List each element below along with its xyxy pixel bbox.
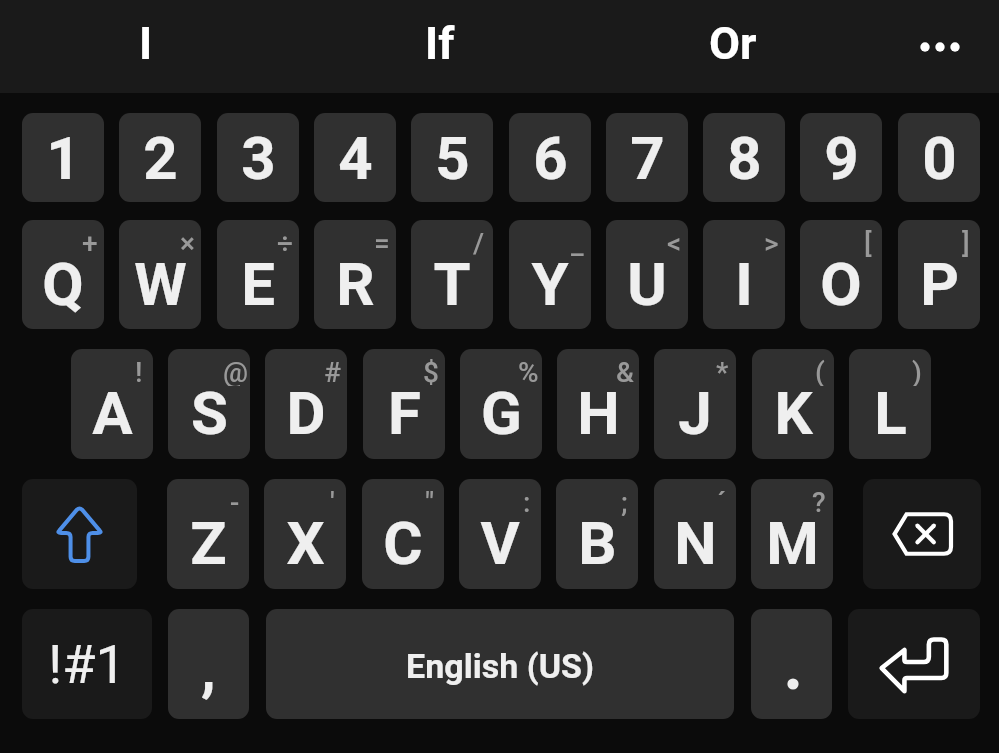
button[interactable]: # xyxy=(265,349,347,459)
button[interactable]: + xyxy=(22,220,104,329)
staticText: If xyxy=(425,17,455,70)
staticText: 6 xyxy=(533,123,568,193)
staticText: ) xyxy=(912,356,922,386)
staticText: M xyxy=(766,508,819,578)
staticText: I xyxy=(735,249,753,319)
staticText: Q xyxy=(42,249,84,319)
button[interactable]: ) xyxy=(849,349,931,459)
button[interactable]: 3 xyxy=(217,113,299,202)
button[interactable]: ' xyxy=(264,479,346,589)
button[interactable]: 9 xyxy=(800,113,882,202)
staticText: H xyxy=(577,378,620,448)
button[interactable]: " xyxy=(362,479,444,589)
button[interactable]: $ xyxy=(363,349,445,459)
staticText: 7 xyxy=(630,123,665,193)
staticText: A xyxy=(92,378,133,448)
staticText: / xyxy=(473,227,485,257)
staticText: N xyxy=(674,508,717,578)
staticText: English (US) xyxy=(406,646,594,686)
staticText: : xyxy=(523,486,531,516)
staticText: B xyxy=(578,508,617,578)
staticText: Y xyxy=(531,249,569,319)
staticText: % xyxy=(518,356,539,386)
button[interactable]: Comma xyxy=(168,609,249,719)
staticText: ; xyxy=(621,486,628,516)
button[interactable]: = xyxy=(314,220,396,329)
staticText: F xyxy=(388,378,421,448)
button[interactable]: English (US) xyxy=(266,609,734,719)
button[interactable]: < xyxy=(606,220,688,329)
staticText: 4 xyxy=(338,123,373,193)
staticText: + xyxy=(82,227,98,257)
staticText: Z xyxy=(190,508,227,578)
staticText: _ xyxy=(571,227,584,257)
staticText: E xyxy=(241,249,275,319)
staticText: C xyxy=(383,508,423,578)
button[interactable]: % xyxy=(460,349,542,459)
button[interactable]: 8 xyxy=(703,113,785,202)
button[interactable]: 0 xyxy=(898,113,980,202)
button[interactable]: Enter xyxy=(848,609,980,719)
staticText: ´ xyxy=(717,486,727,516)
staticText: ( xyxy=(815,356,825,386)
staticText: G xyxy=(481,378,522,448)
staticText: 3 xyxy=(241,123,276,193)
button[interactable]: / xyxy=(411,220,493,329)
staticText: K xyxy=(774,378,813,448)
staticText: D xyxy=(286,378,326,448)
button[interactable]: ] xyxy=(898,220,980,329)
staticText: I xyxy=(139,17,153,70)
staticText: Or xyxy=(709,17,757,70)
button[interactable]: !#1 xyxy=(22,609,152,719)
button[interactable]: × xyxy=(119,220,201,329)
staticText: ? xyxy=(812,486,826,516)
button[interactable]: : xyxy=(459,479,541,589)
button[interactable]: 4 xyxy=(314,113,396,202)
button[interactable]: If xyxy=(350,0,530,93)
button[interactable]: ; xyxy=(556,479,638,589)
button[interactable]: @ xyxy=(168,349,250,459)
staticText: # xyxy=(324,356,342,386)
button[interactable]: 7 xyxy=(606,113,688,202)
button[interactable]: Backspace xyxy=(863,479,981,589)
staticText: [ xyxy=(864,227,872,257)
button[interactable]: Or xyxy=(643,0,823,93)
staticText: , xyxy=(201,633,216,703)
button[interactable]: ? xyxy=(751,479,833,589)
button[interactable]: [ xyxy=(800,220,882,329)
staticText: ÷ xyxy=(277,227,293,257)
button[interactable]: _ xyxy=(509,220,591,329)
button[interactable]: ÷ xyxy=(217,220,299,329)
staticText: 1 xyxy=(46,123,81,193)
button[interactable]: More suggestions xyxy=(885,0,995,93)
staticText: & xyxy=(616,356,634,386)
button[interactable]: * xyxy=(654,349,736,459)
button[interactable]: & xyxy=(557,349,639,459)
button[interactable]: - xyxy=(167,479,249,589)
staticText: W xyxy=(134,249,187,319)
button[interactable]: Period xyxy=(751,609,832,719)
staticText: L xyxy=(874,378,907,448)
staticText: = xyxy=(374,227,390,257)
staticText: > xyxy=(764,227,779,257)
staticText: * xyxy=(716,356,729,386)
button[interactable]: ( xyxy=(752,349,834,459)
button[interactable]: > xyxy=(703,220,785,329)
button[interactable]: 2 xyxy=(119,113,201,202)
button[interactable]: 1 xyxy=(22,113,104,202)
staticText: 8 xyxy=(727,123,762,193)
staticText: - xyxy=(230,486,240,516)
staticText: U xyxy=(627,249,667,319)
staticText: 9 xyxy=(824,123,859,193)
button[interactable]: 6 xyxy=(509,113,591,202)
button[interactable]: Shift xyxy=(22,479,137,589)
staticText: $ xyxy=(423,356,439,386)
button[interactable]: 5 xyxy=(411,113,493,202)
button[interactable]: ´ xyxy=(654,479,736,589)
staticText: V xyxy=(480,508,520,578)
staticText: X xyxy=(286,508,325,578)
staticText: T xyxy=(433,249,471,319)
button[interactable]: I xyxy=(56,0,236,93)
staticText: O xyxy=(820,249,862,319)
button[interactable]: ! xyxy=(71,349,153,459)
